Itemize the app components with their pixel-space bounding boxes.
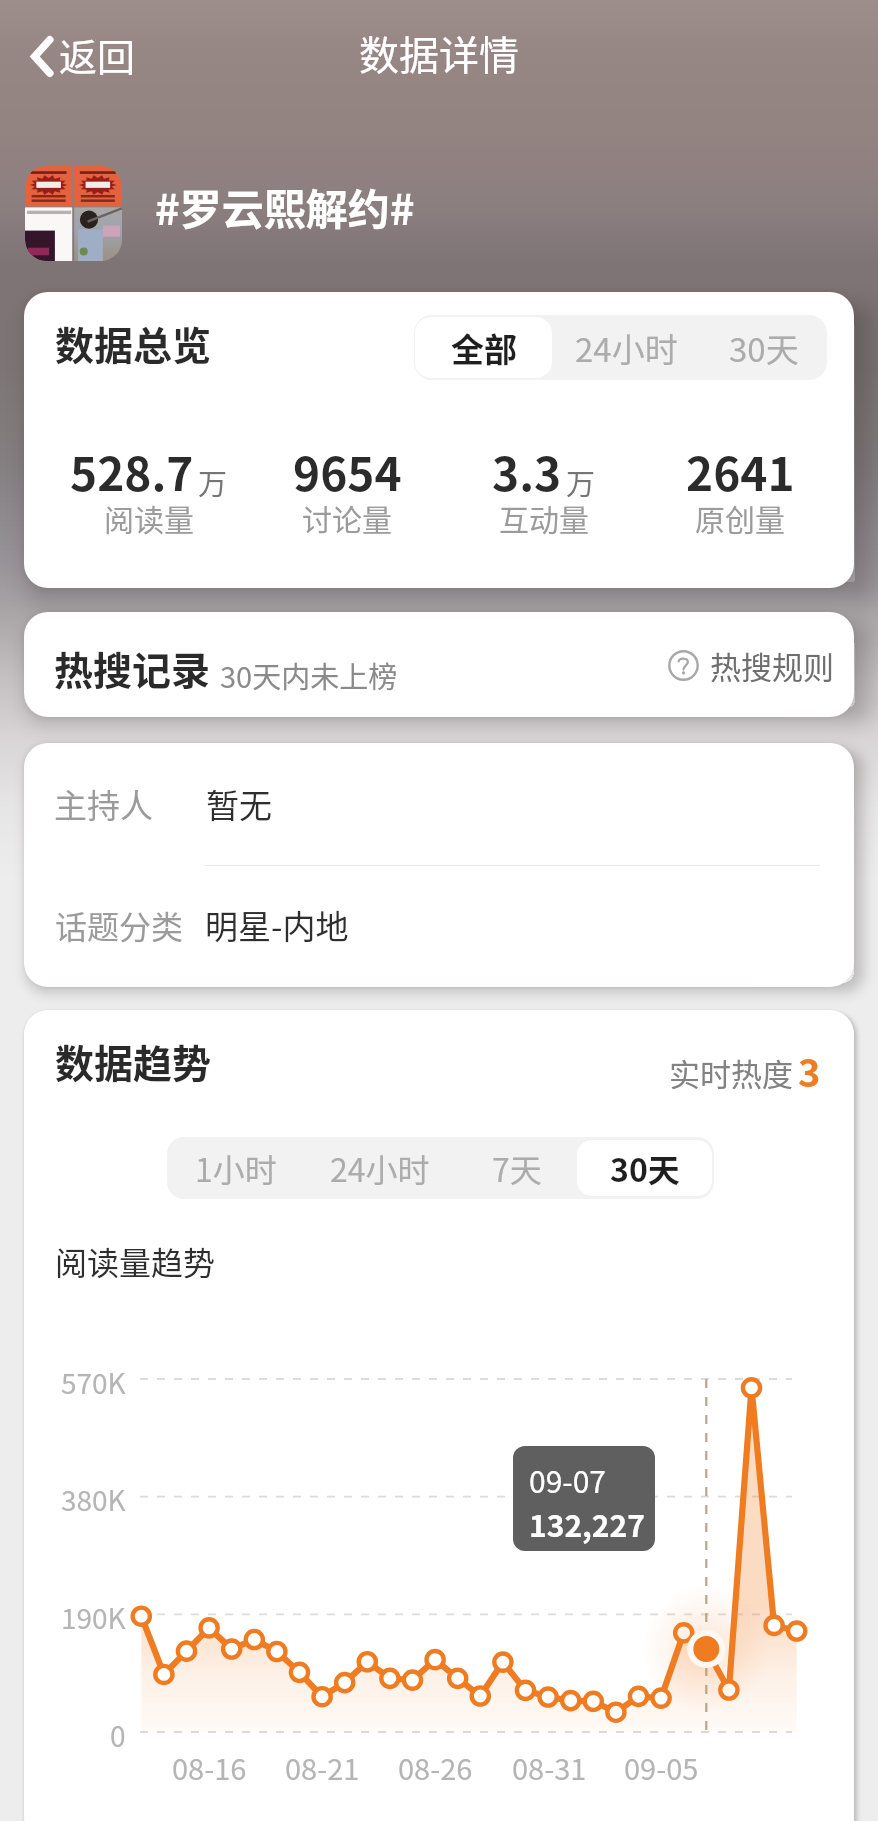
button[interactable]: 30天 (700, 315, 827, 380)
staticText: 数据详情 (359, 24, 519, 82)
staticText: 讨论量 (302, 496, 392, 539)
staticText: 话题分类 (55, 902, 184, 948)
staticText: 3 (798, 1043, 821, 1098)
staticText: 热搜记录 (54, 640, 211, 696)
button[interactable]: 热搜规则 (668, 638, 834, 692)
staticText: 08-16 (172, 1746, 247, 1788)
staticText: 万 (198, 461, 228, 503)
staticText: 万 (566, 461, 596, 503)
staticText: 24小时 (330, 1145, 430, 1191)
button[interactable]: 全部 (415, 317, 552, 378)
staticText: 30天 (610, 1145, 680, 1191)
staticText: 9654 (293, 438, 402, 505)
staticText: 数据总览 (55, 315, 212, 371)
staticText: 阅读量趋势 (55, 1238, 216, 1284)
staticText: 190K (61, 1597, 126, 1638)
staticText: 互动量 (499, 496, 589, 539)
staticText: 数据趋势 (55, 1033, 212, 1089)
button[interactable]: 24小时 (552, 315, 700, 380)
staticText: 09-07 (529, 1458, 607, 1501)
staticText: 1小时 (195, 1145, 277, 1191)
other: Back (29, 34, 55, 79)
staticText: 原创量 (695, 496, 785, 539)
staticText: 7天 (492, 1145, 542, 1191)
staticText: 528.7 (70, 438, 194, 505)
staticText: 09-05 (624, 1746, 699, 1788)
staticText: 30天内未上榜 (220, 654, 398, 696)
staticText: #罗云熙解约# (155, 176, 415, 237)
button[interactable]: 30天 (577, 1140, 712, 1196)
staticText: 明星-内地 (205, 901, 349, 949)
button[interactable]: 24小时 (304, 1137, 456, 1199)
staticText: 380K (61, 1479, 126, 1520)
staticText: 3.3 (492, 438, 562, 505)
staticText: 570K (61, 1362, 126, 1403)
staticText: 08-31 (512, 1746, 587, 1788)
button[interactable]: Back (29, 26, 860, 86)
staticText: 0 (110, 1715, 126, 1756)
button[interactable]: 7天 (456, 1137, 577, 1199)
staticText: 24小时 (575, 324, 678, 372)
staticText: 返回 (59, 27, 136, 82)
staticText: 2641 (686, 438, 795, 505)
staticText: 全部 (451, 324, 517, 372)
staticText: 热搜规则 (710, 643, 834, 688)
staticText: 08-21 (285, 1746, 360, 1788)
staticText: 主持人 (54, 780, 153, 828)
staticText: 实时热度 (669, 1050, 793, 1095)
staticText: 132,227 (529, 1502, 645, 1545)
staticText: 08-26 (398, 1746, 473, 1788)
staticText: 暂无 (206, 780, 272, 828)
staticText: 阅读量 (104, 496, 194, 539)
button[interactable]: 1小时 (167, 1137, 304, 1199)
staticText: 30天 (729, 324, 799, 372)
